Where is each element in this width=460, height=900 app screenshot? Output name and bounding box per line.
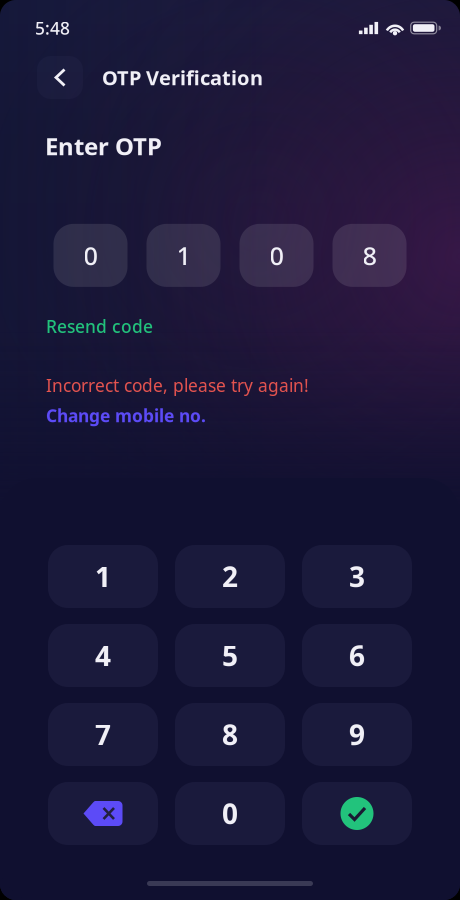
button[interactable]: Change mobile no. <box>46 404 206 427</box>
staticText: Resend code <box>46 315 153 338</box>
staticText: 8 <box>222 716 238 753</box>
button[interactable]: 1 <box>146 224 220 287</box>
staticText: 5:48 <box>35 16 70 39</box>
button[interactable]: 0 <box>239 224 313 287</box>
button[interactable]: 1 <box>48 545 158 608</box>
staticText: 9 <box>349 716 365 753</box>
staticText: Enter OTP <box>45 130 162 162</box>
staticText: 3 <box>349 558 365 595</box>
button[interactable]: 2 <box>175 545 285 608</box>
staticText: OTP Verification <box>102 64 263 91</box>
staticText: 0 <box>269 239 283 272</box>
button[interactable]: Resend code <box>46 315 153 338</box>
button[interactable]: 9 <box>302 703 412 766</box>
button[interactable]: 8 <box>332 224 406 287</box>
staticText: Incorrect code, please try again! <box>46 374 309 397</box>
staticText: 0 <box>83 239 97 272</box>
button[interactable]: 4 <box>48 624 158 687</box>
staticText: 1 <box>176 239 190 272</box>
button[interactable]: 0 <box>53 224 127 287</box>
button[interactable]: 7 <box>48 703 158 766</box>
button[interactable]: 0 <box>175 782 285 845</box>
button[interactable]: Back <box>37 56 83 99</box>
staticText: 1 <box>95 558 111 595</box>
button[interactable]: 5 <box>175 624 285 687</box>
staticText: 5 <box>222 637 238 674</box>
button[interactable]: 6 <box>302 624 412 687</box>
staticText: 8 <box>362 239 376 272</box>
staticText: Change mobile no. <box>46 404 206 427</box>
button[interactable]: 8 <box>175 703 285 766</box>
staticText: 4 <box>95 637 111 674</box>
button[interactable]: 3 <box>302 545 412 608</box>
staticText: 0 <box>222 795 238 832</box>
staticText: 7 <box>95 716 111 753</box>
button[interactable]: Delete <box>48 782 158 845</box>
staticText: 6 <box>349 637 365 674</box>
staticText: 2 <box>222 558 238 595</box>
button[interactable]: Confirm <box>302 782 412 845</box>
